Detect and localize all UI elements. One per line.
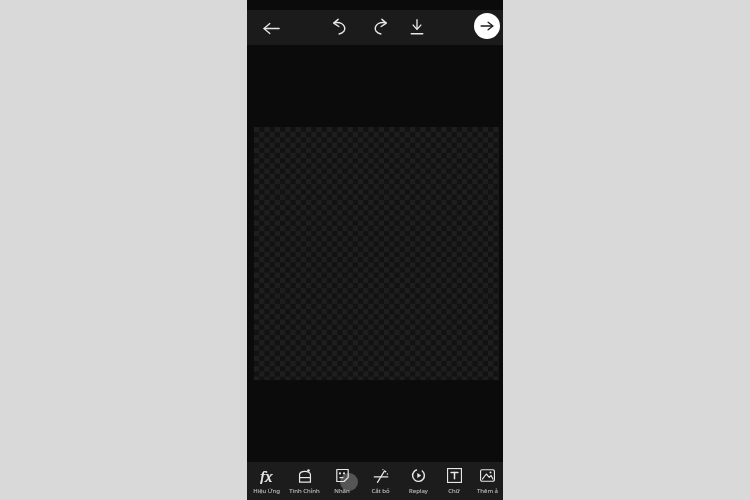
staticText: Hiệu Ứng (253, 487, 280, 495)
button[interactable]: Tinh Chỉnh (285, 462, 323, 500)
staticText: fx (260, 467, 273, 484)
staticText: Nhãn (334, 487, 350, 495)
button[interactable]: Back (255, 12, 287, 44)
button[interactable]: Nhãn (323, 462, 361, 500)
staticText: Chữ (448, 487, 460, 495)
staticText: Tinh Chỉnh (289, 487, 320, 495)
staticText: Replay (409, 487, 428, 495)
button[interactable]: Chữ (437, 462, 471, 500)
button[interactable]: Download (402, 12, 432, 42)
button[interactable]: fx (247, 462, 285, 500)
button[interactable]: Thêm ả (471, 462, 503, 500)
button[interactable]: Redo (364, 12, 394, 42)
button[interactable]: Replay (399, 462, 437, 500)
button[interactable]: Cắt bỏ (361, 462, 399, 500)
button[interactable]: Undo (325, 12, 355, 42)
staticText: Cắt bỏ (371, 487, 390, 495)
button[interactable]: Next (474, 13, 500, 39)
staticText: Thêm ả (477, 487, 498, 495)
